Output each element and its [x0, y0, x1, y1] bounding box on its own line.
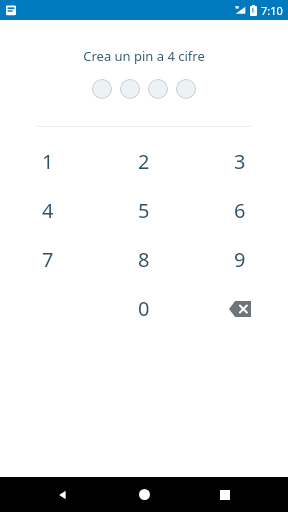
staticText: 2: [138, 148, 150, 175]
button[interactable]: 7: [0, 235, 96, 284]
staticText: 5: [138, 197, 150, 224]
button[interactable]: Recent apps: [207, 477, 243, 512]
button[interactable]: 5: [96, 186, 192, 235]
button[interactable]: Back: [45, 477, 81, 512]
staticText: 8: [138, 246, 150, 273]
staticText: 7: [42, 246, 54, 273]
staticText: 4: [42, 197, 54, 224]
button[interactable]: Backspace: [192, 284, 288, 333]
button[interactable]: 6: [192, 186, 288, 235]
button[interactable]: 8: [96, 235, 192, 284]
staticText: 9: [234, 246, 246, 273]
button[interactable]: 3: [192, 137, 288, 186]
staticText: 7:10: [261, 3, 283, 18]
button[interactable]: Home: [126, 477, 162, 512]
button[interactable]: 1: [0, 137, 96, 186]
button[interactable]: 0: [96, 284, 192, 333]
button[interactable]: 4: [0, 186, 96, 235]
staticText: 6: [234, 197, 246, 224]
button[interactable]: 2: [96, 137, 192, 186]
staticText: Crea un pin a 4 cifre: [0, 47, 288, 65]
staticText: 1: [42, 148, 54, 175]
button[interactable]: 9: [192, 235, 288, 284]
staticText: 0: [138, 295, 150, 322]
staticText: 3: [234, 148, 246, 175]
